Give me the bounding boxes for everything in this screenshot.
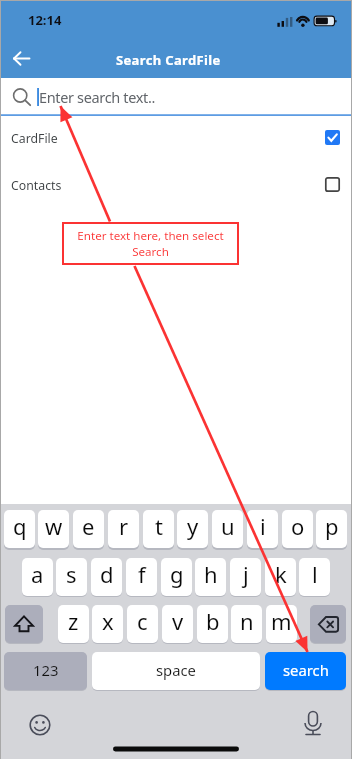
button[interactable]: x: [92, 605, 123, 643]
button[interactable]: Emoji: [26, 711, 54, 739]
button[interactable]: n: [231, 605, 262, 643]
staticText: 123: [33, 660, 59, 680]
button[interactable]: f: [126, 558, 157, 596]
button[interactable]: y: [177, 510, 208, 548]
button[interactable]: p: [316, 510, 347, 548]
staticText: 12:14: [28, 11, 62, 29]
button[interactable]: k: [265, 558, 296, 596]
staticText: l: [312, 559, 318, 589]
button[interactable]: j: [230, 558, 261, 596]
button[interactable]: i: [247, 510, 278, 548]
button[interactable]: m: [266, 605, 297, 643]
staticText: v: [172, 606, 184, 636]
staticText: b: [206, 606, 220, 636]
button[interactable]: z: [58, 605, 89, 643]
button[interactable]: t: [143, 510, 174, 548]
button[interactable]: Voice input: [299, 708, 327, 736]
button[interactable]: space: [92, 652, 260, 690]
staticText: CardFile: [11, 130, 58, 147]
staticText: search: [283, 660, 329, 680]
button[interactable]: o: [282, 510, 313, 548]
staticText: t: [155, 511, 163, 541]
button[interactable]: h: [195, 558, 226, 596]
button[interactable]: Shift: [5, 605, 43, 643]
staticText: f: [138, 559, 146, 589]
staticText: n: [240, 606, 254, 636]
staticText: z: [68, 606, 79, 636]
button[interactable]: a: [22, 558, 53, 596]
staticText: Contacts: [11, 177, 62, 194]
button[interactable]: 123: [4, 652, 87, 690]
button[interactable]: b: [197, 605, 228, 643]
staticText: i: [260, 511, 266, 541]
button[interactable]: s: [56, 558, 87, 596]
staticText: Enter search text..: [39, 87, 155, 107]
staticText: o: [291, 511, 305, 541]
button[interactable]: e: [73, 510, 104, 548]
staticText: y: [187, 511, 199, 541]
button[interactable]: u: [212, 510, 243, 548]
staticText: s: [66, 559, 77, 589]
staticText: g: [170, 559, 184, 589]
staticText: r: [119, 511, 129, 541]
button[interactable]: Backspace: [310, 605, 346, 643]
button[interactable]: v: [162, 605, 193, 643]
staticText: h: [204, 559, 218, 589]
button[interactable]: Enter search text..: [0, 78, 352, 116]
button[interactable]: w: [38, 510, 69, 548]
button[interactable]: search: [265, 652, 346, 690]
button[interactable]: l: [299, 558, 330, 596]
button[interactable]: d: [91, 558, 122, 596]
staticText: a: [31, 559, 44, 589]
button[interactable]: Back: [0, 39, 46, 78]
staticText: x: [102, 606, 114, 636]
staticText: j: [243, 559, 249, 589]
staticText: Enter text here, then select Search: [74, 228, 227, 259]
button[interactable]: r: [108, 510, 139, 548]
staticText: w: [45, 511, 63, 541]
staticText: space: [156, 660, 196, 680]
staticText: Search CardFile: [116, 51, 221, 69]
staticText: q: [13, 511, 27, 541]
button[interactable]: g: [161, 558, 192, 596]
button[interactable]: Contacts: [0, 164, 352, 211]
button[interactable]: q: [4, 510, 35, 548]
staticText: m: [271, 606, 292, 636]
staticText: e: [82, 511, 95, 541]
button[interactable]: CardFile: [0, 117, 352, 164]
button[interactable]: c: [127, 605, 158, 643]
staticText: p: [325, 511, 339, 541]
staticText: k: [275, 559, 287, 589]
staticText: d: [100, 559, 114, 589]
staticText: u: [221, 511, 235, 541]
staticText: c: [137, 606, 148, 636]
